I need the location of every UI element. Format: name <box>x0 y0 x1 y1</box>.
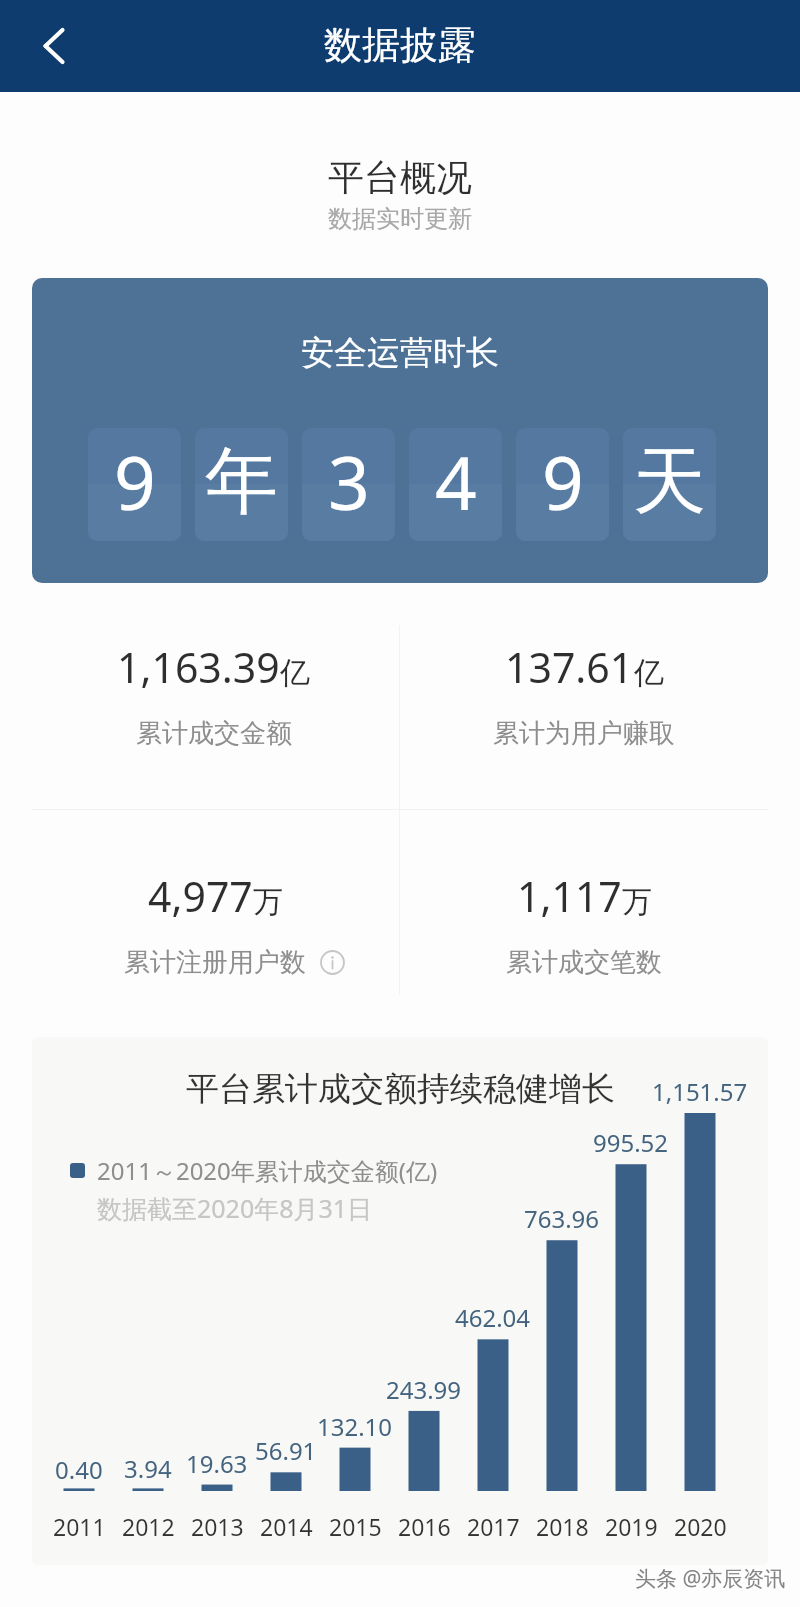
staticText: 137.61 <box>505 639 634 695</box>
staticText: 1,151.57 <box>652 1075 748 1108</box>
staticText: 2013 <box>191 1511 244 1542</box>
staticText: 2016 <box>398 1511 451 1542</box>
staticText: 平台累计成交额持续稳健增长 <box>186 1068 615 1110</box>
staticText: 4,977 <box>148 868 253 924</box>
staticText: 2012 <box>122 1511 175 1542</box>
staticText: 243.99 <box>386 1373 462 1406</box>
button[interactable]: 4,977 <box>31 848 399 998</box>
staticText: 亿 <box>280 654 310 692</box>
staticText: 累计注册用户数 <box>124 946 306 979</box>
staticText: 2014 <box>260 1511 313 1542</box>
button[interactable]: 平台累计成交额持续稳健增长 <box>32 1037 768 1565</box>
staticText: 462.04 <box>455 1301 531 1334</box>
staticText: 万 <box>253 883 283 921</box>
staticText: 亿 <box>634 654 664 692</box>
button[interactable]: Back <box>28 20 80 72</box>
staticText: 9 <box>114 432 156 531</box>
staticText: 累计成交金额 <box>136 717 292 750</box>
staticText: 1,163.39 <box>117 639 280 695</box>
staticText: 数据实时更新 <box>0 204 800 234</box>
staticText: 累计为用户赚取 <box>493 717 675 750</box>
staticText: 2015 <box>329 1511 382 1542</box>
staticText: 763.96 <box>524 1202 600 1235</box>
staticText: 132.10 <box>317 1410 393 1443</box>
staticText: 1,117 <box>517 868 622 924</box>
button[interactable]: 安全运营时长 <box>32 278 768 583</box>
button[interactable]: 1,117 <box>400 848 768 998</box>
staticText: 2017 <box>467 1511 520 1542</box>
staticText: 平台概况 <box>0 155 800 200</box>
staticText: 天 <box>633 436 706 528</box>
staticText: 安全运营时长 <box>301 332 499 374</box>
button[interactable]: 137.61 <box>400 619 768 769</box>
staticText: 0.40 <box>55 1453 103 1486</box>
staticText: 万 <box>622 883 652 921</box>
staticText: 3 <box>328 432 370 531</box>
staticText: 数据披露 <box>324 21 476 69</box>
staticText: 9 <box>542 432 584 531</box>
staticText: 2019 <box>605 1511 658 1542</box>
staticText: 995.52 <box>593 1126 669 1159</box>
staticText: 2020 <box>674 1511 727 1542</box>
staticText: 累计成交笔数 <box>506 946 662 979</box>
staticText: 数据截至2020年8月31日 <box>97 1191 373 1225</box>
staticText: 2011～2020年累计成交金额(亿) <box>97 1154 438 1187</box>
staticText: 3.94 <box>124 1452 172 1485</box>
staticText: 19.63 <box>186 1447 248 1480</box>
staticText: 4 <box>435 432 477 531</box>
staticText: 56.91 <box>255 1434 317 1467</box>
staticText: 头条 @亦辰资讯 <box>635 1564 786 1593</box>
button[interactable]: 1,163.39 <box>29 619 397 769</box>
staticText: 年 <box>205 436 278 528</box>
staticText: 2018 <box>536 1511 589 1542</box>
staticText: 2011 <box>53 1511 106 1542</box>
